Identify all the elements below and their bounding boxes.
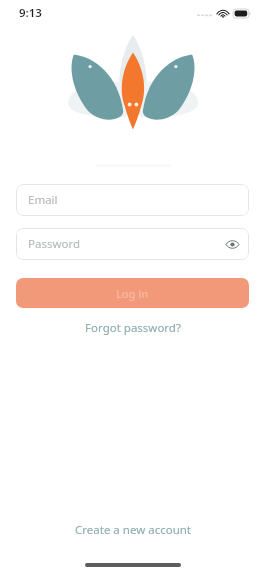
staticText: 9:13 (19, 5, 42, 21)
button[interactable]: Email (16, 184, 249, 216)
button[interactable]: Create a new account (67, 519, 199, 541)
staticText: Forgot password? (85, 320, 181, 336)
staticText: Password (28, 236, 81, 252)
button[interactable]: Forgot password? (77, 317, 189, 339)
button[interactable]: Password (16, 228, 249, 260)
button[interactable]: Show password (222, 234, 242, 254)
staticText: Create a new account (75, 522, 191, 538)
staticText: Email (28, 192, 58, 208)
button[interactable]: Log in (16, 278, 249, 308)
staticText: Log in (116, 286, 149, 301)
